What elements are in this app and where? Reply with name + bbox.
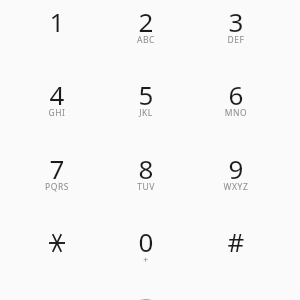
button[interactable]: 1 xyxy=(13,0,101,53)
staticText: 0 xyxy=(102,224,190,256)
staticText: 9 xyxy=(192,151,280,183)
staticText: 6 xyxy=(192,77,280,109)
staticText: ABC xyxy=(102,34,190,48)
staticText: + xyxy=(102,254,190,268)
staticText: 2 xyxy=(102,4,190,36)
button[interactable]: pound xyxy=(192,205,280,273)
staticText: 7 xyxy=(13,151,101,183)
staticText: TUV xyxy=(102,181,190,195)
button[interactable]: 3 xyxy=(192,0,280,53)
button[interactable]: Call xyxy=(120,294,172,300)
staticText: # xyxy=(192,224,280,256)
staticText: 4 xyxy=(13,77,101,109)
staticText: PQRS xyxy=(13,181,101,195)
staticText: 5 xyxy=(102,77,190,109)
button[interactable]: 2 xyxy=(102,0,190,53)
button[interactable]: 4 xyxy=(13,58,101,126)
button[interactable]: 0 xyxy=(102,205,190,273)
staticText: JKL xyxy=(102,107,190,121)
staticText: WXYZ xyxy=(192,181,280,195)
staticText: DEF xyxy=(192,34,280,48)
button[interactable]: 9 xyxy=(192,132,280,200)
staticText: 8 xyxy=(102,151,190,183)
staticText: MNO xyxy=(192,107,280,121)
button[interactable]: 7 xyxy=(13,132,101,200)
button[interactable]: 6 xyxy=(192,58,280,126)
button[interactable]: star xyxy=(13,205,101,273)
staticText: GHI xyxy=(13,107,101,121)
staticText: 1 xyxy=(13,4,101,36)
staticText: 3 xyxy=(192,4,280,36)
button[interactable]: 8 xyxy=(102,132,190,200)
button[interactable]: 5 xyxy=(102,58,190,126)
